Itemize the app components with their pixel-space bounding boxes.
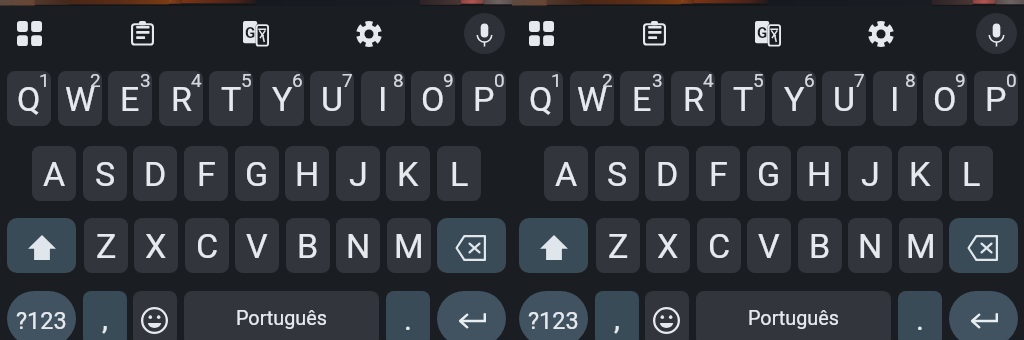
button[interactable]: Comma xyxy=(83,291,127,340)
staticText: J xyxy=(349,154,368,194)
staticText: W xyxy=(577,79,608,119)
button[interactable]: Translate xyxy=(745,11,791,57)
button[interactable]: O xyxy=(411,71,455,126)
button[interactable]: Translate xyxy=(233,11,279,57)
button[interactable]: Settings xyxy=(858,11,904,57)
button[interactable]: Português xyxy=(696,291,891,340)
button[interactable]: H xyxy=(285,146,329,201)
staticText: 2 xyxy=(90,71,101,91)
staticText: P xyxy=(473,79,495,119)
staticText: 6 xyxy=(804,71,815,91)
staticText: A xyxy=(555,154,578,194)
staticText: M xyxy=(394,226,424,266)
button[interactable]: U xyxy=(822,71,866,126)
staticText: H xyxy=(807,154,832,194)
staticText: F xyxy=(197,154,216,194)
staticText: 4 xyxy=(191,71,202,91)
button[interactable]: Enter xyxy=(949,291,1018,340)
button[interactable]: Enter xyxy=(437,291,506,340)
button[interactable]: Y xyxy=(772,71,816,126)
button[interactable]: S xyxy=(595,146,639,201)
button[interactable]: Português xyxy=(184,291,379,340)
button[interactable]: A xyxy=(32,146,76,201)
button[interactable]: U xyxy=(310,71,354,126)
button[interactable]: Q xyxy=(519,71,563,126)
button[interactable]: Shift xyxy=(519,218,588,273)
button[interactable]: S xyxy=(83,146,127,201)
button[interactable]: F xyxy=(184,146,228,201)
button[interactable]: E xyxy=(620,71,664,126)
button[interactable]: Settings xyxy=(346,11,392,57)
button[interactable]: M xyxy=(899,218,943,273)
button[interactable]: Voice input xyxy=(976,13,1017,54)
button[interactable]: V xyxy=(747,218,791,273)
staticText: Português xyxy=(236,307,327,330)
button[interactable]: C xyxy=(697,218,741,273)
button[interactable]: A xyxy=(544,146,588,201)
staticText: J xyxy=(861,154,880,194)
button[interactable]: Comma xyxy=(595,291,639,340)
button[interactable]: X xyxy=(646,218,690,273)
button[interactable]: Voice input xyxy=(464,13,505,54)
staticText: M xyxy=(906,226,936,266)
button[interactable]: P xyxy=(974,71,1018,126)
button[interactable]: W xyxy=(58,71,102,126)
button[interactable]: Period xyxy=(898,291,942,340)
button[interactable]: D xyxy=(645,146,689,201)
button[interactable]: Backspace xyxy=(437,218,506,273)
button[interactable]: D xyxy=(133,146,177,201)
button[interactable]: R xyxy=(159,71,203,126)
button[interactable]: Symbols xyxy=(7,291,76,340)
button[interactable]: L xyxy=(437,146,481,201)
button[interactable]: Symbols xyxy=(519,291,588,340)
button[interactable]: Shift xyxy=(7,218,76,273)
staticText: G xyxy=(757,24,768,42)
button[interactable]: Clipboard xyxy=(631,10,677,56)
button[interactable]: E xyxy=(108,71,152,126)
button[interactable]: Emoji xyxy=(645,291,689,340)
button[interactable]: I xyxy=(361,71,405,126)
button[interactable]: B xyxy=(286,218,330,273)
button[interactable]: Apps xyxy=(518,10,564,56)
button[interactable]: F xyxy=(696,146,740,201)
button[interactable]: M xyxy=(387,218,431,273)
button[interactable]: P xyxy=(462,71,506,126)
button[interactable]: J xyxy=(336,146,380,201)
button[interactable]: L xyxy=(949,146,993,201)
button[interactable]: O xyxy=(923,71,967,126)
button[interactable]: X xyxy=(134,218,178,273)
button[interactable]: T xyxy=(209,71,253,126)
button[interactable]: K xyxy=(386,146,430,201)
button[interactable]: V xyxy=(235,218,279,273)
button[interactable]: I xyxy=(873,71,917,126)
button[interactable]: W xyxy=(570,71,614,126)
staticText: X xyxy=(657,226,679,266)
staticText: X xyxy=(145,226,167,266)
staticText: B xyxy=(809,226,831,266)
button[interactable]: K xyxy=(898,146,942,201)
button[interactable]: H xyxy=(797,146,841,201)
staticText: R xyxy=(171,79,192,119)
button[interactable]: Period xyxy=(386,291,430,340)
button[interactable]: Emoji xyxy=(133,291,177,340)
button[interactable]: Q xyxy=(7,71,51,126)
staticText: 5 xyxy=(753,71,764,91)
button[interactable]: Clipboard xyxy=(119,10,165,56)
staticText: F xyxy=(709,154,728,194)
button[interactable]: J xyxy=(848,146,892,201)
button[interactable]: Z xyxy=(596,218,640,273)
button[interactable]: Z xyxy=(84,218,128,273)
button[interactable]: B xyxy=(798,218,842,273)
button[interactable]: C xyxy=(185,218,229,273)
staticText: U xyxy=(833,79,856,119)
button[interactable]: Y xyxy=(260,71,304,126)
button[interactable]: G xyxy=(747,146,791,201)
button[interactable]: Apps xyxy=(6,10,52,56)
button[interactable]: R xyxy=(671,71,715,126)
button[interactable]: N xyxy=(336,218,380,273)
staticText: 0 xyxy=(494,71,505,91)
button[interactable]: T xyxy=(721,71,765,126)
button[interactable]: N xyxy=(848,218,892,273)
button[interactable]: G xyxy=(235,146,279,201)
button[interactable]: Backspace xyxy=(949,218,1018,273)
